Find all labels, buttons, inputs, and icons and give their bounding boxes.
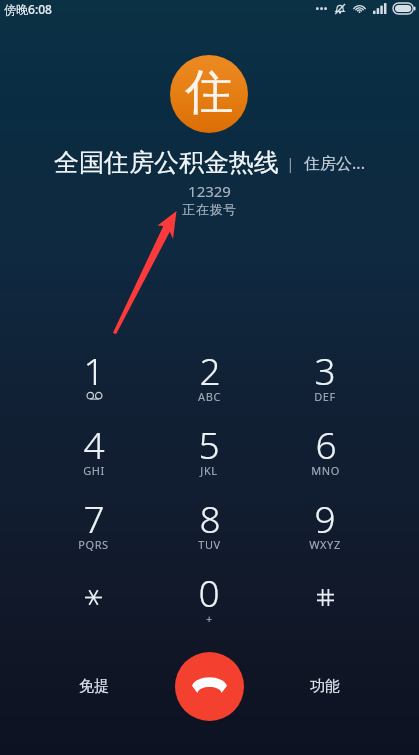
staticText: TUV: [198, 537, 221, 552]
staticText: DEF: [314, 389, 336, 404]
staticText: 4: [83, 419, 105, 469]
staticText: 住房公...: [304, 152, 365, 174]
staticText: WXYZ: [309, 537, 341, 552]
button[interactable]: 功能: [267, 646, 383, 726]
button[interactable]: 免提: [36, 646, 151, 726]
staticText: 3: [314, 345, 336, 395]
button[interactable]: Key 6: [267, 415, 383, 489]
staticText: 2: [199, 345, 221, 395]
staticText: 7: [83, 493, 105, 543]
staticText: 0: [198, 567, 220, 617]
button[interactable]: Key #: [267, 563, 383, 637]
button[interactable]: End call: [175, 652, 244, 721]
staticText: MNO: [311, 463, 340, 478]
staticText: 8: [199, 493, 221, 543]
staticText: 免提: [79, 677, 109, 696]
staticText: JKL: [200, 463, 218, 478]
button[interactable]: Key 7: [36, 489, 151, 563]
staticText: 傍晚6:08: [4, 1, 52, 17]
staticText: 功能: [310, 677, 340, 696]
staticText: ABC: [198, 389, 221, 404]
button[interactable]: Key 8: [151, 489, 267, 563]
staticText: +: [206, 611, 213, 626]
staticText: |: [286, 153, 295, 173]
button[interactable]: Key *: [36, 563, 151, 637]
staticText: 1: [83, 345, 105, 395]
button[interactable]: Key 1: [36, 341, 151, 415]
staticText: 6: [315, 419, 337, 469]
button[interactable]: Key 3: [267, 341, 383, 415]
staticText: 全国住房公积金热线: [54, 147, 279, 178]
staticText: PQRS: [78, 537, 109, 552]
button[interactable]: Key 5: [151, 415, 267, 489]
staticText: 正在拨号: [182, 201, 237, 217]
staticText: 12329: [188, 181, 231, 201]
button[interactable]: Key 4: [36, 415, 151, 489]
button[interactable]: Key 0: [151, 563, 267, 637]
staticText: 9: [314, 493, 336, 543]
staticText: •••: [315, 1, 328, 16]
staticText: 住: [185, 62, 233, 122]
staticText: 5: [198, 419, 220, 469]
button[interactable]: Key 2: [151, 341, 267, 415]
staticText: GHI: [83, 463, 105, 478]
button[interactable]: Key 9: [267, 489, 383, 563]
